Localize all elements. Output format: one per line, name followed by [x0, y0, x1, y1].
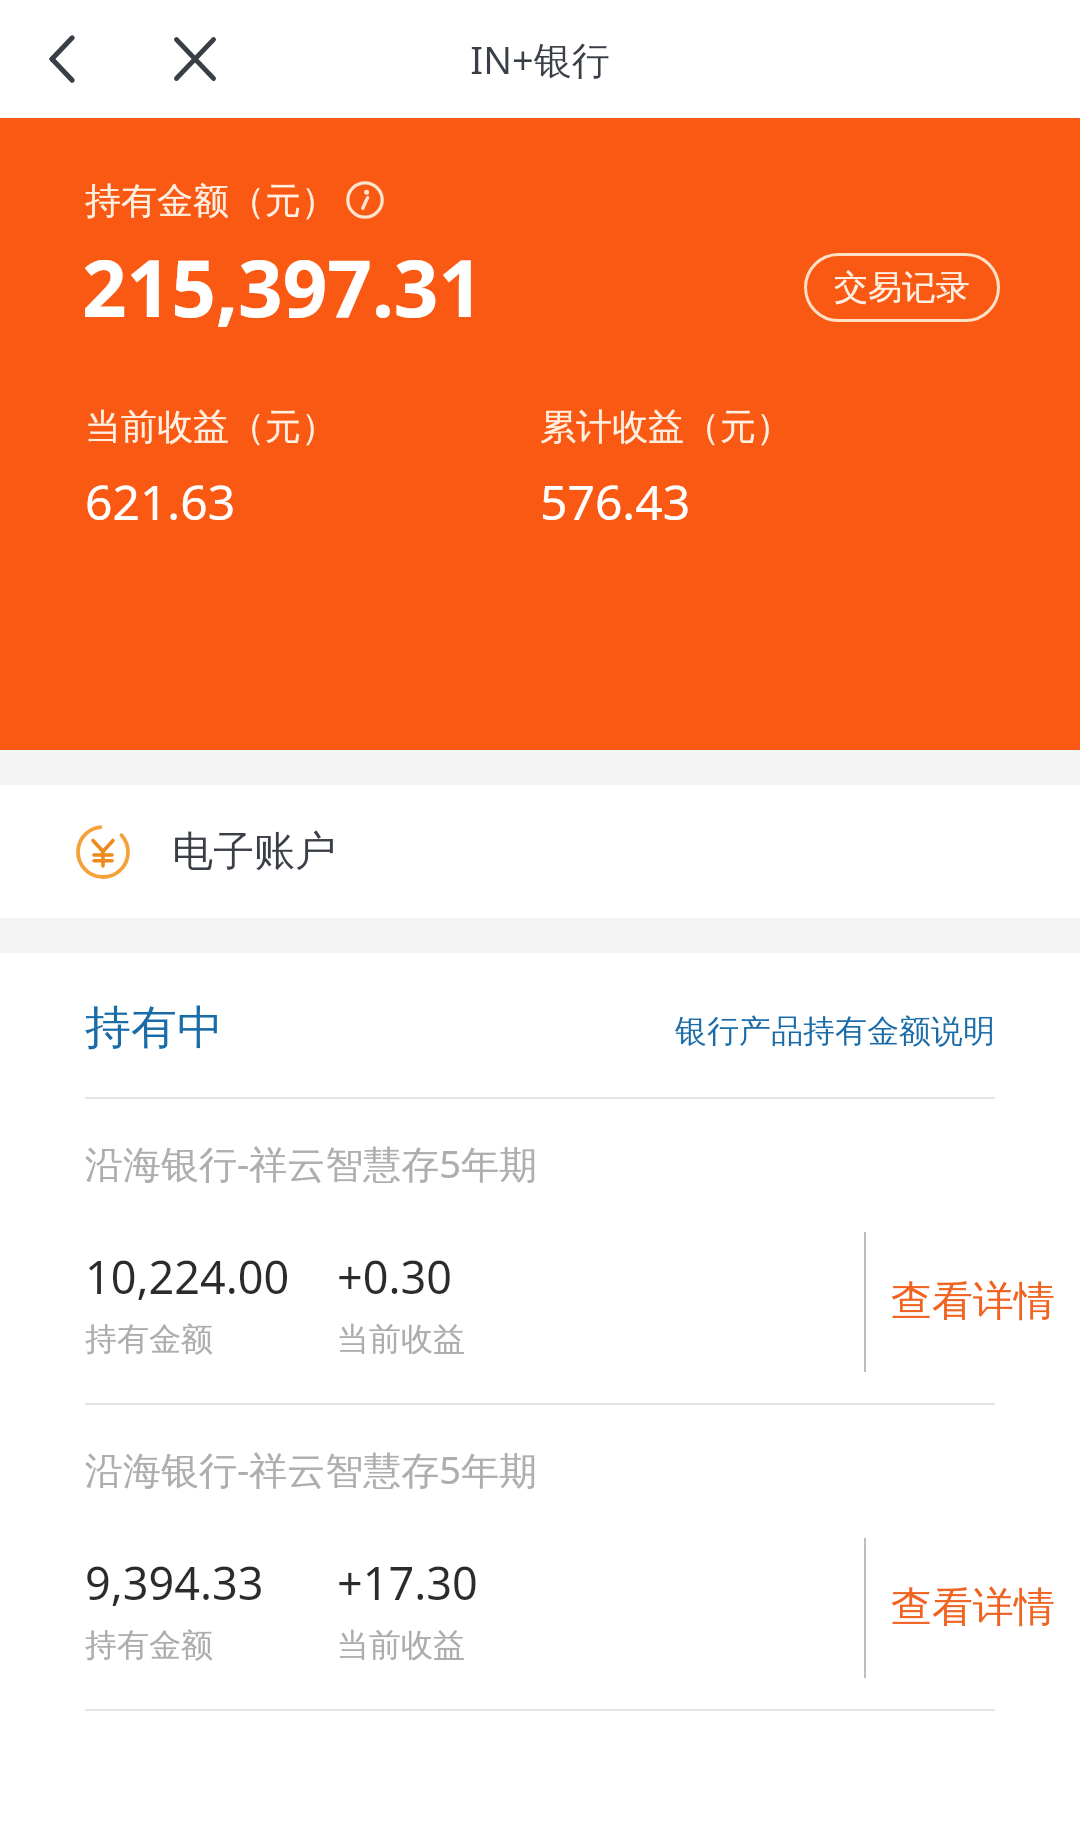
staticText: 查看详情 — [891, 1582, 1055, 1634]
staticText: 10,224.00 — [85, 1246, 290, 1307]
staticText: 持有金额 — [85, 1319, 213, 1359]
button[interactable]: Close — [152, 16, 238, 102]
staticText: 银行产品持有金额说明 — [675, 1011, 995, 1051]
button[interactable]: 沿海银行-祥云智慧存5年期 — [0, 1099, 1080, 1403]
button[interactable]: 沿海银行-祥云智慧存5年期 — [0, 1405, 1080, 1709]
staticText: 621.63 — [85, 469, 236, 534]
staticText: 当前收益 — [337, 1319, 465, 1359]
button[interactable]: 持有金额说明 — [341, 176, 389, 224]
staticText: 当前收益 — [337, 1625, 465, 1665]
staticText: 沿海银行-祥云智慧存5年期 — [85, 1443, 537, 1495]
staticText: IN+银行 — [470, 33, 610, 85]
staticText: 持有中 — [85, 999, 223, 1057]
button[interactable]: 查看详情 — [866, 1529, 1080, 1687]
staticText: 交易记录 — [834, 266, 970, 309]
staticText: 累计收益（元） — [540, 404, 792, 449]
staticText: 电子账户 — [172, 826, 336, 878]
staticText: 沿海银行-祥云智慧存5年期 — [85, 1137, 537, 1189]
staticText: 215,397.31 — [82, 234, 484, 340]
staticText: +0.30 — [337, 1246, 453, 1307]
staticText: +17.30 — [337, 1552, 478, 1613]
staticText: 576.43 — [540, 469, 691, 534]
button[interactable]: 持有中 — [85, 999, 223, 1057]
staticText: 9,394.33 — [85, 1552, 264, 1613]
button[interactable]: 电子账户 — [0, 785, 1080, 918]
staticText: 当前收益（元） — [85, 404, 337, 449]
staticText: 持有金额 — [85, 1625, 213, 1665]
button[interactable]: 银行产品持有金额说明 — [675, 1011, 995, 1057]
button[interactable]: 交易记录 — [804, 253, 1000, 322]
staticText: 查看详情 — [891, 1276, 1055, 1328]
button[interactable]: Back — [20, 16, 106, 102]
button[interactable]: 查看详情 — [866, 1223, 1080, 1381]
staticText: 持有金额（元） — [85, 178, 337, 223]
